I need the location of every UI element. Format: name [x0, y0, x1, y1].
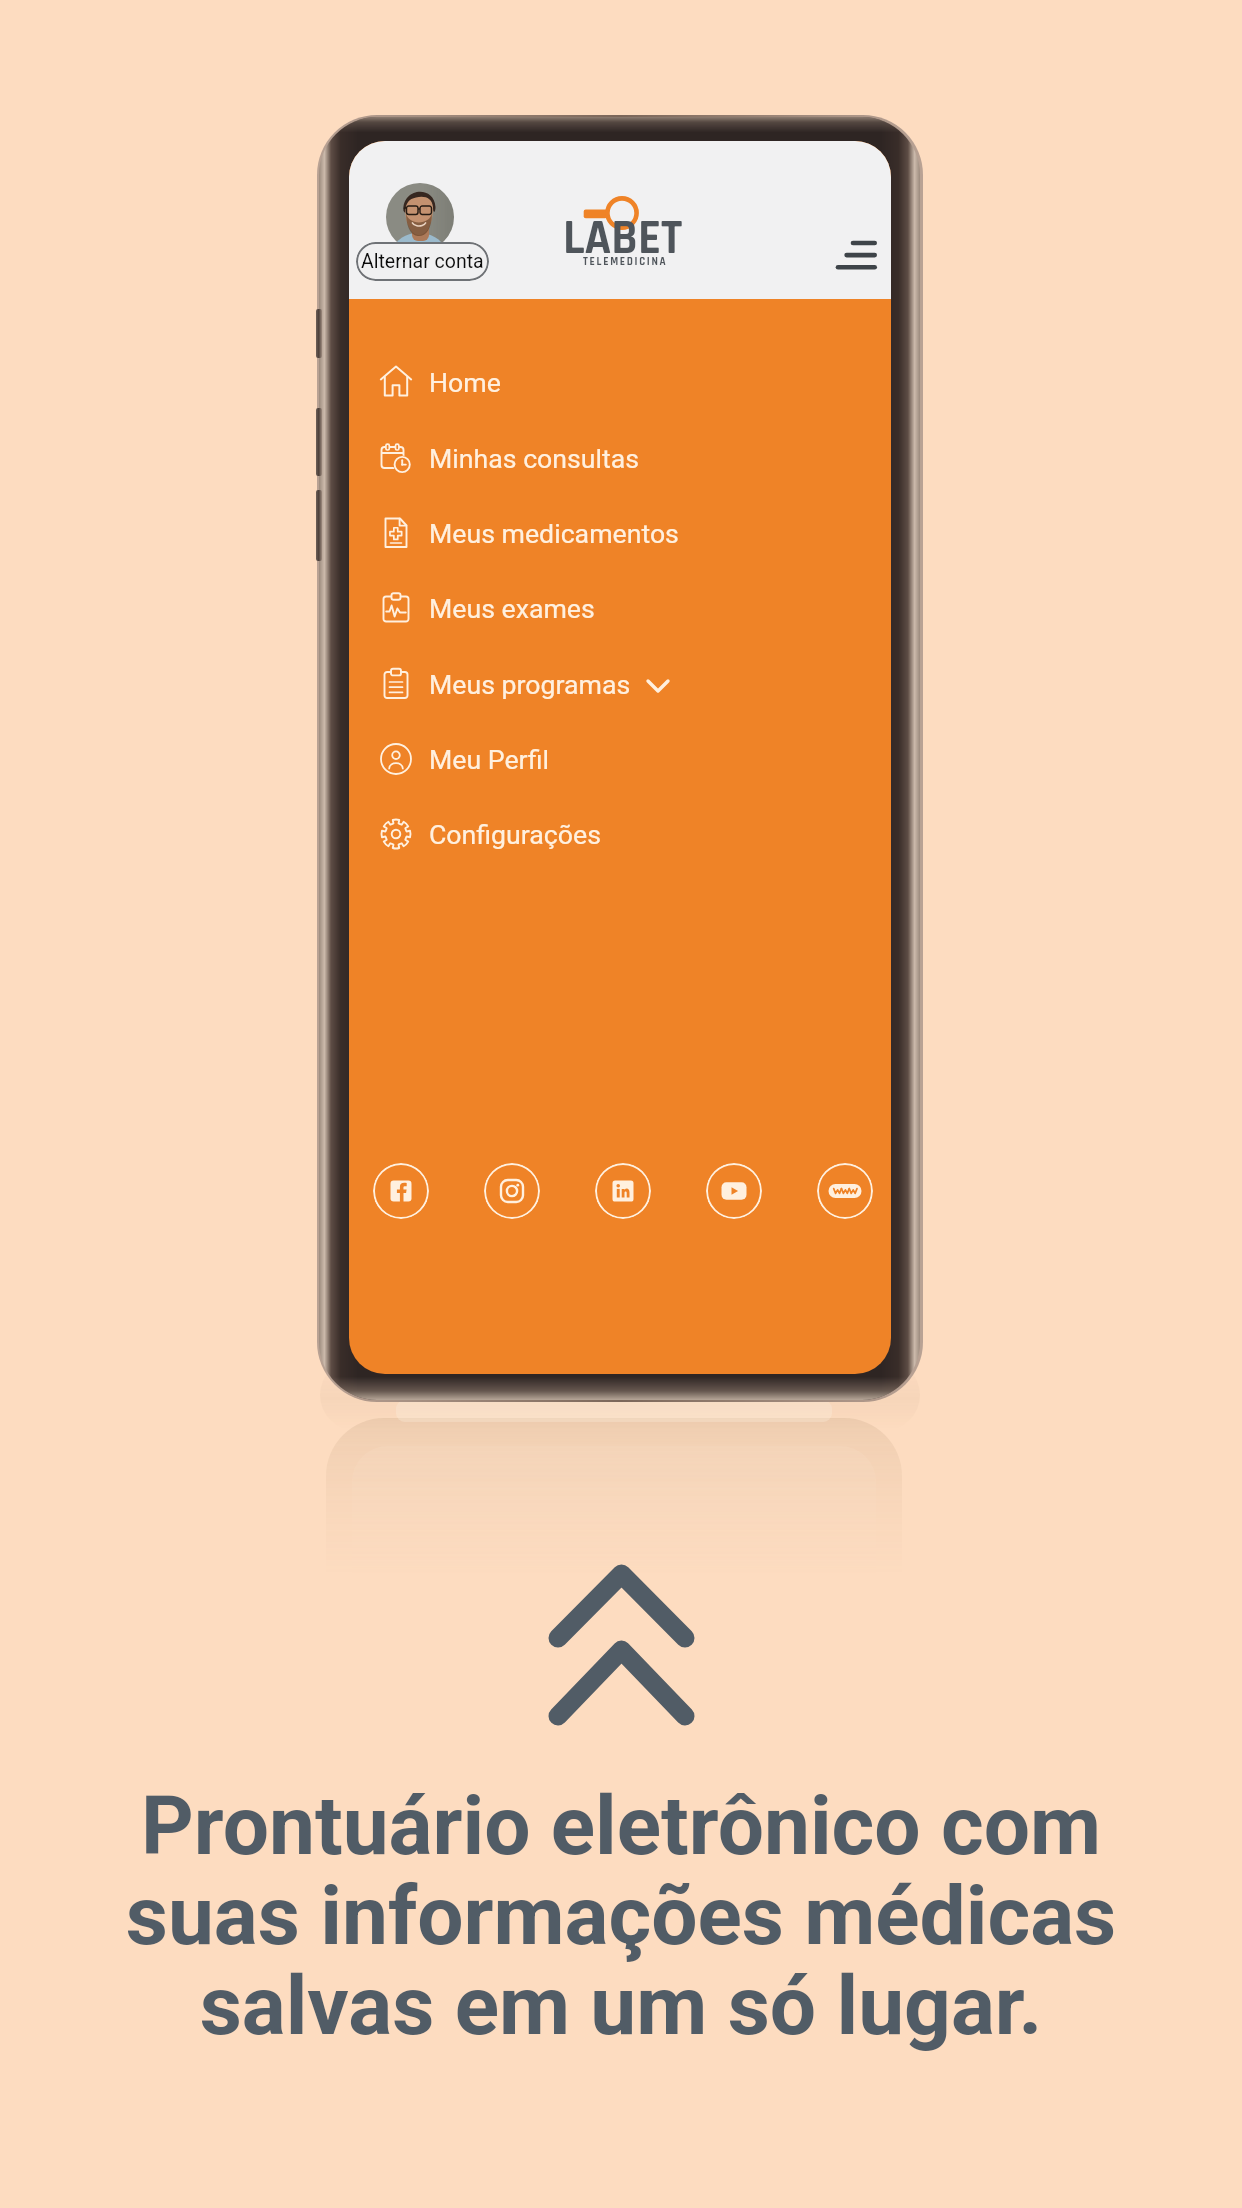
button[interactable]: Foto do perfil	[386, 183, 454, 251]
staticText: Configurações	[429, 819, 601, 850]
button[interactable]: Site	[817, 1163, 873, 1219]
button[interactable]: Minhas consultas	[349, 421, 891, 496]
button[interactable]: LinkedIn	[595, 1163, 651, 1219]
button[interactable]: Home	[349, 345, 891, 420]
button[interactable]: Facebook	[373, 1163, 429, 1219]
button[interactable]: Meus programas	[349, 647, 891, 722]
staticText: Alternar conta	[361, 250, 484, 273]
button[interactable]: YouTube	[706, 1163, 762, 1219]
button[interactable]: Instagram	[484, 1163, 540, 1219]
staticText: TELEMEDICINA	[583, 255, 668, 269]
button[interactable]: Alternar conta	[356, 242, 489, 281]
button[interactable]: Meus exames	[349, 571, 891, 646]
button[interactable]: Meus medicamentos	[349, 496, 891, 571]
staticText: Meu Perfil	[429, 744, 549, 775]
button[interactable]: Configurações	[349, 797, 891, 872]
button[interactable]: Meu Perfil	[349, 722, 891, 797]
staticText: Meus exames	[429, 593, 595, 624]
button[interactable]: Menu	[823, 221, 891, 281]
staticText: Meus medicamentos	[429, 518, 679, 549]
button[interactable]: Ver mais	[548, 1563, 692, 1729]
staticText: Minhas consultas	[429, 443, 640, 474]
staticText: Meus programas	[429, 669, 631, 700]
staticText: Home	[429, 367, 501, 398]
staticText: Prontuário eletrônico com suas informaçõ…	[0, 1778, 1242, 2054]
staticText: LABET	[563, 208, 683, 269]
